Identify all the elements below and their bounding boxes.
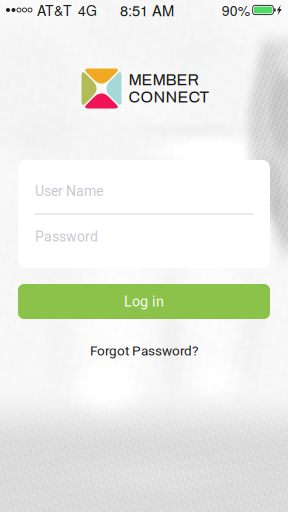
staticText: 8:51 AM <box>120 0 174 20</box>
button[interactable]: Forgot Password? <box>80 338 208 364</box>
button[interactable]: Log in <box>18 284 270 319</box>
staticText: 4G <box>78 0 97 20</box>
staticText: Password <box>35 228 98 245</box>
staticText: User Name <box>35 183 103 199</box>
staticText: 90% <box>222 0 250 20</box>
staticText: CONNECT <box>128 88 209 106</box>
staticText: AT&T <box>37 0 72 20</box>
staticText: MEMBER <box>128 71 199 88</box>
staticText: Log in <box>124 293 164 310</box>
staticText: Forgot Password? <box>90 343 198 359</box>
